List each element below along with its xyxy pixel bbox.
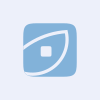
button[interactable]: App icon	[23, 23, 77, 77]
